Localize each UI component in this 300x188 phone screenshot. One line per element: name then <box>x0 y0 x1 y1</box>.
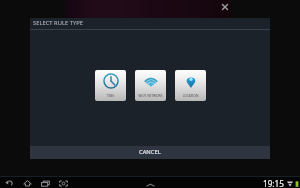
staticText: WI-FI NETWORK <box>135 94 166 98</box>
button[interactable]: WI-FI NETWORK <box>135 70 166 101</box>
button[interactable]: Recent apps <box>39 177 52 188</box>
button[interactable]: CANCEL <box>30 146 270 159</box>
button[interactable]: LOCATION <box>175 70 206 101</box>
button[interactable]: Back <box>3 177 16 188</box>
staticText: 19:15 <box>263 178 284 188</box>
button[interactable]: Home <box>21 177 34 188</box>
staticText: SELECT RULE TYPE <box>33 19 83 27</box>
button[interactable]: TIME <box>95 70 126 101</box>
button[interactable]: Screenshot <box>57 177 70 188</box>
staticText: CANCEL <box>139 148 161 156</box>
staticText: TIME <box>95 94 126 98</box>
staticText: LOCATION <box>175 94 206 98</box>
button[interactable]: Close <box>218 0 231 13</box>
